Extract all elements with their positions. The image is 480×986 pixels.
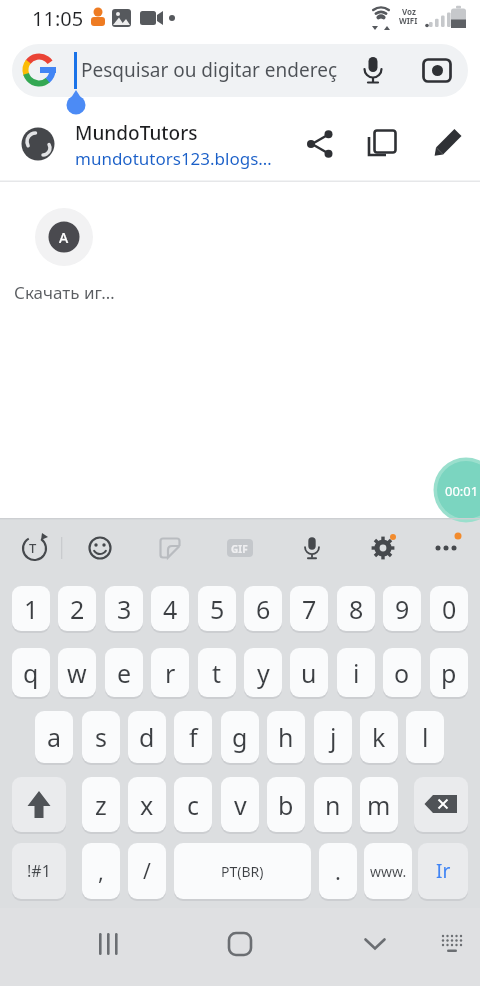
staticText: v (234, 788, 247, 822)
button[interactable] (12, 777, 66, 832)
staticText: z (95, 788, 107, 822)
button[interactable]: 6 (244, 586, 282, 631)
button[interactable] (361, 122, 405, 166)
button[interactable]: t (198, 648, 236, 697)
button[interactable] (414, 777, 468, 832)
staticText: Voz (402, 6, 416, 17)
staticText: Ir (436, 858, 451, 884)
staticText: 5 (210, 592, 225, 626)
staticText: 6 (256, 592, 271, 626)
staticText: j (330, 720, 337, 754)
button[interactable]: x (128, 777, 166, 832)
button[interactable] (218, 526, 262, 570)
button[interactable]: p (430, 648, 468, 697)
staticText: y (257, 656, 270, 690)
button[interactable] (78, 526, 122, 570)
button[interactable]: 2 (58, 586, 96, 631)
staticText: f (189, 720, 198, 754)
button[interactable]: d (128, 711, 166, 763)
button[interactable]: 8 (337, 586, 375, 631)
button[interactable] (300, 122, 344, 166)
button[interactable] (218, 922, 262, 966)
button[interactable] (361, 526, 405, 570)
staticText: p (441, 656, 457, 690)
staticText: MundoTutors (75, 120, 198, 146)
button[interactable]: v (221, 777, 259, 832)
staticText: k (372, 720, 386, 754)
staticText: WIFI (399, 15, 418, 26)
button[interactable] (424, 526, 468, 570)
button[interactable]: o (383, 648, 421, 697)
button[interactable]: l (406, 711, 444, 763)
staticText: A (59, 228, 69, 247)
staticText: n (325, 788, 341, 822)
button[interactable]: j (314, 711, 352, 763)
button[interactable]: . (319, 843, 357, 899)
button[interactable]: www. (364, 843, 412, 899)
button[interactable]: 4 (151, 586, 189, 631)
button[interactable]: n (314, 777, 352, 832)
button[interactable] (12, 44, 468, 97)
button[interactable]: / (128, 843, 166, 899)
staticText: Pesquisar ou digitar endereç (81, 57, 338, 83)
staticText: GIF (231, 542, 248, 556)
staticText: . (335, 856, 341, 886)
staticText: www. (370, 862, 407, 881)
button[interactable]: 5 (198, 586, 236, 631)
button[interactable]: 3 (105, 586, 143, 631)
button[interactable]: f (174, 711, 212, 763)
button[interactable]: Ir (418, 843, 468, 899)
button[interactable]: , (82, 843, 120, 899)
staticText: 0 (442, 592, 457, 626)
staticText: w (67, 656, 87, 690)
staticText: i (353, 656, 360, 690)
staticText: m (367, 788, 391, 822)
button[interactable] (86, 922, 130, 966)
staticText: s (95, 720, 107, 754)
button[interactable]: c (174, 777, 212, 832)
button[interactable]: b (267, 777, 305, 832)
staticText: !#1 (27, 860, 51, 882)
button[interactable] (0, 104, 290, 180)
button[interactable]: i (337, 648, 375, 697)
staticText: g (232, 720, 248, 754)
button[interactable] (148, 526, 192, 570)
button[interactable]: 1 (12, 586, 50, 631)
button[interactable]: g (221, 711, 259, 763)
button[interactable]: q (12, 648, 50, 697)
staticText: a (47, 720, 62, 754)
button[interactable] (290, 526, 334, 570)
button[interactable]: u (290, 648, 328, 697)
staticText: 7 (302, 592, 317, 626)
staticText: l (422, 720, 429, 754)
button[interactable] (353, 922, 397, 966)
staticText: 2 (70, 592, 85, 626)
button[interactable] (430, 922, 474, 966)
button[interactable]: w (58, 648, 96, 697)
button[interactable]: y (244, 648, 282, 697)
button[interactable] (423, 122, 467, 166)
button[interactable]: !#1 (12, 843, 66, 899)
staticText: 8 (349, 592, 364, 626)
button[interactable]: 7 (290, 586, 328, 631)
button[interactable]: k (360, 711, 398, 763)
button[interactable]: 0 (430, 586, 468, 631)
button[interactable]: r (151, 648, 189, 697)
button[interactable]: 9 (383, 586, 421, 631)
button[interactable]: s (82, 711, 120, 763)
button[interactable]: h (267, 711, 305, 763)
button[interactable]: a (35, 711, 73, 763)
staticText: o (394, 656, 410, 690)
button[interactable]: e (105, 648, 143, 697)
button[interactable] (13, 526, 57, 570)
staticText: 9 (395, 592, 410, 626)
staticText: 00:01 (445, 482, 479, 499)
staticText: 11:05 (32, 5, 84, 32)
staticText: , (98, 856, 104, 886)
staticText: PT(BR) (221, 862, 264, 881)
staticText: 1 (24, 592, 39, 626)
button[interactable]: z (82, 777, 120, 832)
button[interactable]: m (360, 777, 398, 832)
staticText: / (143, 857, 151, 886)
button[interactable]: PT(BR) (174, 843, 311, 899)
